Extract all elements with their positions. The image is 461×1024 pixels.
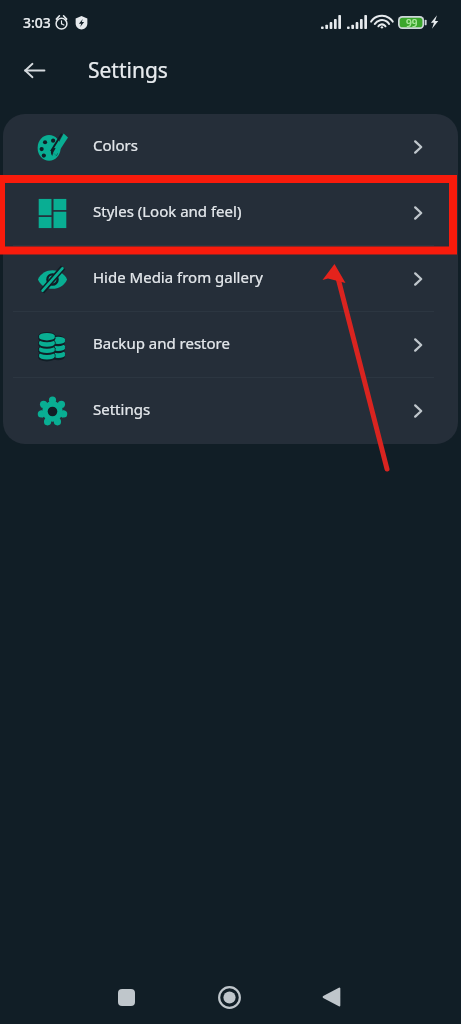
button[interactable]: Settings	[3, 378, 458, 444]
staticText: Settings	[93, 399, 151, 419]
button[interactable]: Home	[207, 975, 251, 1019]
staticText: Settings	[88, 56, 168, 85]
button[interactable]: Back	[309, 975, 353, 1019]
staticText: 99	[406, 16, 418, 29]
staticText: Styles (Look and feel)	[93, 201, 242, 221]
button[interactable]: Back	[11, 47, 57, 93]
staticText: Hide Media from gallery	[93, 267, 263, 287]
staticText: Colors	[93, 135, 138, 155]
button[interactable]: Styles (Look and feel)	[3, 180, 458, 246]
staticText: Backup and restore	[93, 333, 230, 353]
button[interactable]: Recent apps	[104, 975, 148, 1019]
button[interactable]: Hide Media from gallery	[3, 246, 458, 312]
button[interactable]: Colors	[3, 114, 458, 180]
staticText: 3:03	[23, 13, 51, 32]
button[interactable]: Backup and restore	[3, 312, 458, 378]
